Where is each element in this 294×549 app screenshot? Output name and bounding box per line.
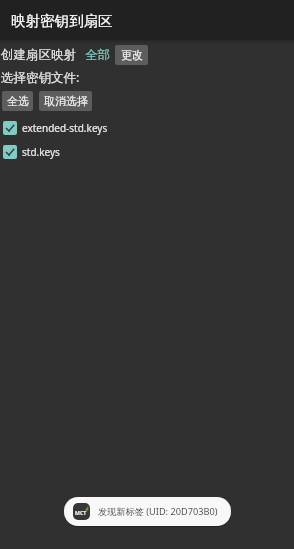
button[interactable]: 全选 — [2, 91, 33, 111]
button[interactable]: 全部 — [85, 47, 110, 63]
staticText: 映射密钥到扇区 — [11, 12, 113, 30]
staticText: MCT — [75, 509, 87, 516]
staticText: 选择密钥文件: — [1, 69, 80, 86]
button[interactable]: 更改 — [115, 45, 148, 65]
button[interactable]: std.keys — [0, 142, 294, 162]
button[interactable]: 取消选择 — [39, 91, 92, 111]
staticText: 创建扇区映射 — [1, 47, 76, 63]
staticText: extended-std.keys — [22, 121, 108, 135]
staticText: 更改 — [121, 48, 143, 62]
button[interactable]: extended-std.keys — [0, 118, 294, 138]
staticText: 发现新标签 (UID: 20D703B0) — [98, 505, 218, 518]
staticText: std.keys — [22, 145, 60, 159]
other: MIFARE Classic Tool — [73, 503, 90, 520]
button[interactable]: MIFARE Classic Tool — [64, 497, 231, 526]
staticText: 取消选择 — [44, 94, 88, 108]
staticText: 全选 — [7, 94, 29, 108]
